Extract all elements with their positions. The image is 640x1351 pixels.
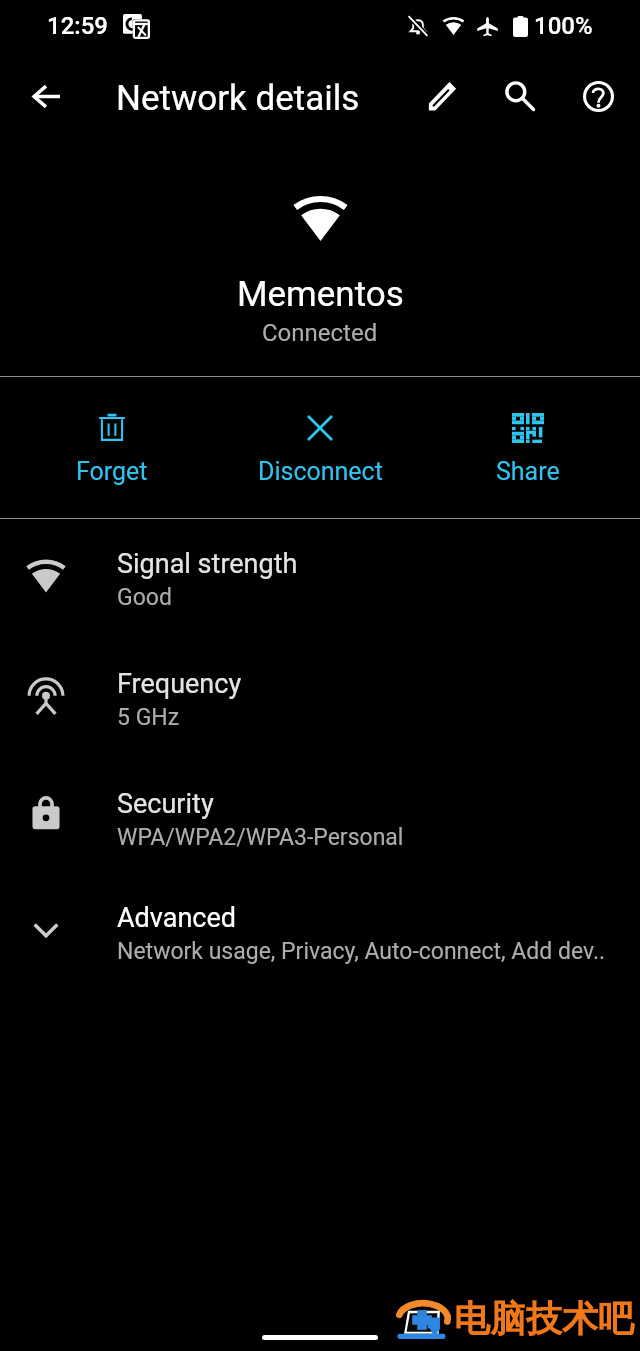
staticText: 电脑技术吧	[454, 1296, 634, 1341]
staticText: Mementos	[237, 274, 404, 315]
button[interactable]: Help	[559, 57, 637, 135]
staticText: Disconnect	[258, 457, 383, 486]
staticText: Advanced	[117, 902, 236, 934]
staticText: WPA/WPA2/WPA3-Personal	[117, 824, 404, 851]
staticText: Network usage, Privacy, Auto-connect, Ad…	[117, 938, 606, 965]
button[interactable]: Back	[14, 64, 78, 128]
button[interactable]: Security	[0, 759, 640, 879]
staticText: Network details	[116, 78, 360, 119]
staticText: Share	[496, 457, 560, 486]
staticText: Security	[117, 788, 214, 820]
staticText: Frequency	[117, 668, 242, 700]
button[interactable]: Signal strength	[0, 519, 640, 639]
button[interactable]: Modify	[403, 57, 481, 135]
button[interactable]: Disconnect	[216, 377, 424, 518]
button[interactable]: Forget	[8, 377, 216, 518]
staticText: Forget	[76, 457, 148, 486]
button[interactable]: Frequency	[0, 639, 640, 759]
staticText: Good	[117, 584, 172, 611]
button[interactable]: Search	[481, 57, 559, 135]
staticText: Connected	[262, 319, 378, 347]
staticText: 100%	[534, 12, 593, 40]
staticText: 5 GHz	[117, 704, 180, 731]
button[interactable]: Advanced	[0, 873, 640, 993]
staticText: 12:59	[47, 12, 108, 40]
button[interactable]: Share	[424, 377, 632, 518]
staticText: Signal strength	[117, 548, 298, 580]
